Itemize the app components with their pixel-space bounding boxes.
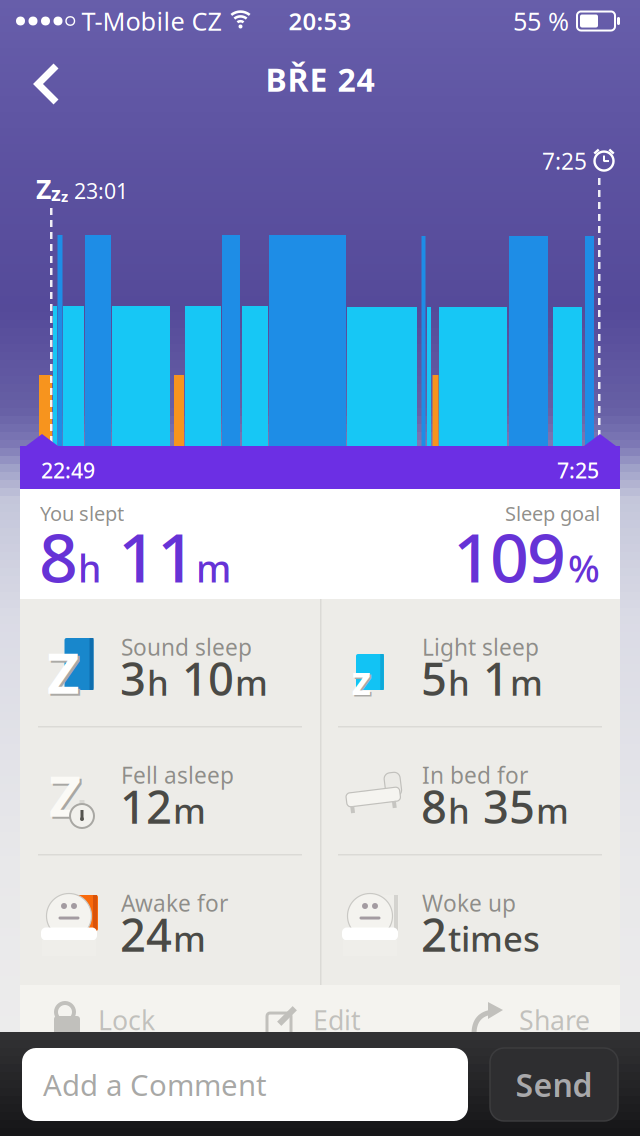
staticText: 12	[120, 776, 172, 836]
staticText: Sound sleep	[121, 632, 252, 662]
staticText: 1	[471, 648, 509, 708]
staticText: You slept	[40, 500, 124, 527]
staticText: 11	[118, 511, 196, 601]
staticText: Light sleep	[422, 632, 539, 662]
staticText: %	[568, 543, 600, 593]
button[interactable]: Share	[471, 1002, 590, 1038]
staticText: 35	[471, 776, 535, 836]
staticText: times	[448, 915, 540, 961]
button[interactable]: Send	[490, 1048, 618, 1121]
staticText: Z	[47, 635, 79, 709]
button[interactable]: Back	[0, 0, 100, 140]
staticText: h	[448, 787, 470, 833]
staticText: z	[351, 653, 371, 706]
staticText: 24	[120, 904, 172, 964]
staticText: BŘE 24	[265, 58, 374, 100]
button[interactable]: Add a Comment	[22, 1048, 468, 1121]
staticText: z	[61, 187, 68, 206]
staticText: m	[536, 787, 569, 833]
staticText: m	[173, 787, 206, 833]
staticText: Z	[49, 758, 81, 832]
button[interactable]: Edit	[265, 1002, 361, 1038]
staticText: h	[448, 659, 470, 705]
button[interactable]: Lock	[50, 1002, 155, 1038]
staticText: Lock	[98, 1002, 155, 1038]
staticText: In bed for	[422, 760, 528, 790]
staticText: 55 %	[513, 4, 569, 38]
staticText: h	[78, 543, 101, 593]
staticText: m	[510, 659, 543, 705]
staticText: 2	[421, 904, 447, 964]
staticText: m	[235, 659, 268, 705]
staticText: Z	[51, 760, 83, 834]
staticText: 10	[170, 648, 234, 708]
staticText: 8	[39, 511, 78, 601]
staticText: 23:01	[68, 177, 128, 205]
staticText: Add a Comment	[43, 1065, 267, 1104]
staticText: Woke up	[422, 888, 516, 918]
staticText: 8	[421, 776, 447, 836]
staticText: 3	[120, 648, 146, 708]
staticText: 7:25	[542, 146, 587, 176]
staticText: m	[173, 915, 206, 961]
staticText: T-Mobile CZ	[81, 4, 221, 38]
staticText: Z	[36, 171, 51, 206]
staticText: Send	[515, 1063, 592, 1106]
staticText: Sleep goal	[505, 500, 600, 527]
staticText: 7:25	[557, 456, 599, 484]
staticText: Share	[519, 1002, 590, 1038]
staticText: z	[51, 180, 61, 207]
staticText: Z	[49, 637, 81, 711]
staticText: h	[147, 659, 169, 705]
staticText: 22:49	[41, 456, 95, 484]
staticText: 109	[453, 511, 566, 601]
staticText: 5	[421, 648, 447, 708]
staticText: Fell asleep	[121, 760, 234, 790]
staticText: m	[196, 543, 231, 593]
staticText: z	[353, 654, 373, 707]
staticText: Awake for	[121, 888, 228, 918]
staticText: Edit	[313, 1002, 361, 1038]
staticText: 20:53	[288, 5, 351, 37]
